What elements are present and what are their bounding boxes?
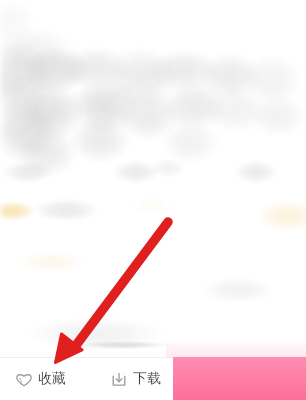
staticText: 下载 — [133, 370, 161, 388]
button[interactable]: 下载 — [78, 357, 173, 400]
staticText: 收藏 — [38, 370, 66, 388]
button[interactable]: 收藏 — [0, 357, 78, 400]
button[interactable]: 立即播放 — [173, 357, 306, 400]
